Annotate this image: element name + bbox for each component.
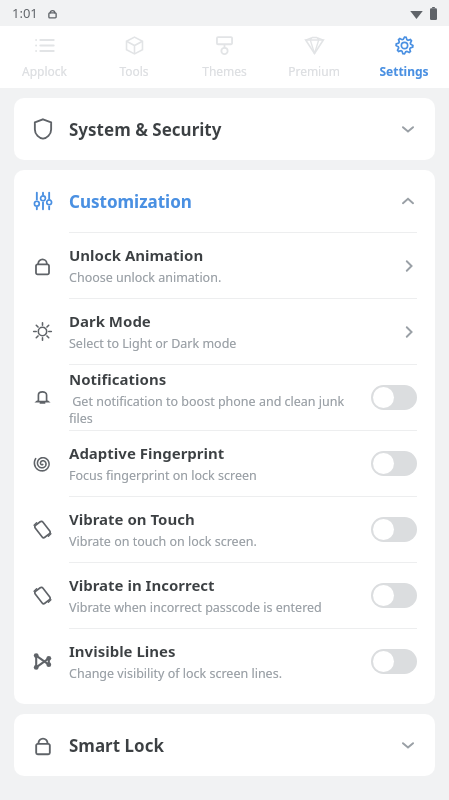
button[interactable]: Applock	[0, 26, 89, 79]
button[interactable]: Vibrate in Incorrect	[14, 563, 435, 628]
staticText: Vibrate in Incorrect	[69, 575, 215, 595]
staticText: Vibrate on touch on lock screen.	[69, 533, 257, 550]
button[interactable]: Toggle	[371, 517, 417, 542]
staticText: Adaptive Fingerprint	[69, 443, 225, 463]
staticText: Dark Mode	[69, 311, 151, 331]
staticText: Premium	[288, 63, 340, 79]
button[interactable]: Themes	[179, 26, 269, 79]
button[interactable]: Vibrate on Touch	[14, 497, 435, 562]
staticText: Vibrate on Touch	[69, 509, 195, 529]
staticText: 1:01	[12, 4, 38, 22]
button[interactable]: Toggle	[371, 451, 417, 476]
staticText: Settings	[379, 63, 429, 79]
staticText: System & Security	[69, 118, 222, 141]
staticText: Get notification to boost phone and clea…	[69, 393, 363, 427]
staticText: Invisible Lines	[69, 641, 176, 661]
staticText: Unlock Animation	[69, 245, 204, 265]
staticText: Focus fingerprint on lock screen	[69, 467, 257, 484]
staticText: Choose unlock animation.	[69, 269, 222, 286]
staticText: Change visibility of lock screen lines.	[69, 665, 283, 682]
button[interactable]: Unlock Animation	[14, 233, 435, 298]
staticText: Notifications	[69, 369, 167, 389]
staticText: Smart Lock	[69, 734, 164, 757]
staticText: Applock	[22, 63, 67, 79]
staticText: Themes	[202, 63, 247, 79]
button[interactable]: Dark Mode	[14, 299, 435, 364]
button[interactable]: Customization	[14, 170, 435, 232]
button[interactable]: Toggle	[371, 385, 417, 410]
button[interactable]: Smart Lock	[14, 714, 435, 776]
button[interactable]: Toggle	[371, 583, 417, 608]
button[interactable]: Premium	[269, 26, 359, 79]
staticText: Select to Light or Dark mode	[69, 335, 237, 352]
button[interactable]: Invisible Lines	[14, 629, 435, 694]
staticText: Vibrate when incorrect passcode is enter…	[69, 599, 322, 616]
button[interactable]: Adaptive Fingerprint	[14, 431, 435, 496]
button[interactable]: Tools	[89, 26, 179, 79]
button[interactable]: Settings	[359, 26, 449, 79]
staticText: Tools	[119, 63, 149, 79]
button[interactable]: Toggle	[371, 649, 417, 674]
button[interactable]: Notifications	[14, 365, 435, 430]
staticText: Customization	[69, 190, 192, 213]
button[interactable]: System & Security	[14, 98, 435, 160]
